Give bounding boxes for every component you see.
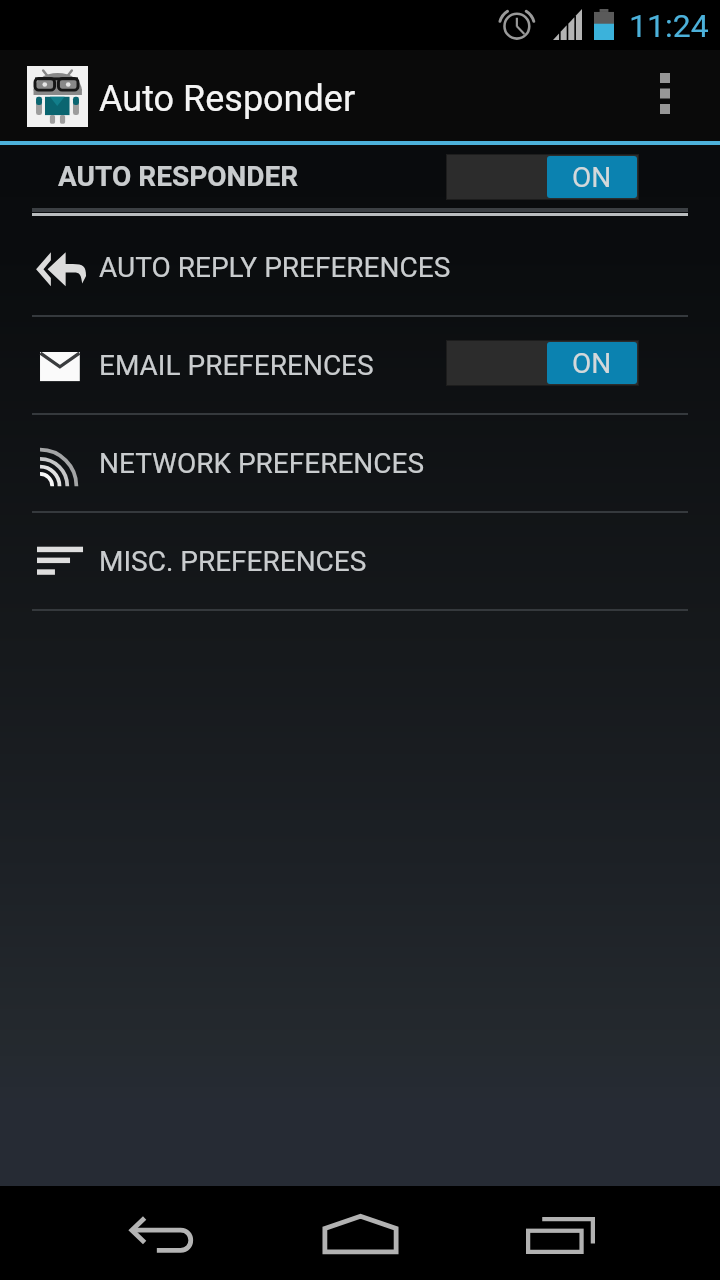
button[interactable]: ON xyxy=(446,340,639,386)
staticText: EMAIL PREFERENCES xyxy=(99,349,374,382)
button[interactable]: MISC. PREFERENCES xyxy=(0,513,720,611)
button[interactable]: Back xyxy=(107,1192,211,1274)
staticText: 11:24 xyxy=(629,7,709,45)
button[interactable]: ON xyxy=(446,154,639,200)
button[interactable]: NETWORK PREFERENCES xyxy=(0,415,720,513)
staticText: AUTO REPLY PREFERENCES xyxy=(99,251,451,284)
staticText: NETWORK PREFERENCES xyxy=(99,447,425,480)
button[interactable]: Home xyxy=(308,1192,412,1274)
button[interactable]: Recent apps xyxy=(508,1192,612,1274)
button[interactable]: More options xyxy=(628,50,700,141)
button[interactable]: EMAIL PREFERENCES xyxy=(0,317,720,415)
staticText: MISC. PREFERENCES xyxy=(99,545,367,578)
staticText: AUTO RESPONDER xyxy=(58,160,299,193)
staticText: ON xyxy=(572,347,612,380)
staticText: Auto Responder xyxy=(99,78,356,120)
button[interactable]: AUTO REPLY PREFERENCES xyxy=(0,219,720,317)
staticText: ON xyxy=(572,161,612,194)
